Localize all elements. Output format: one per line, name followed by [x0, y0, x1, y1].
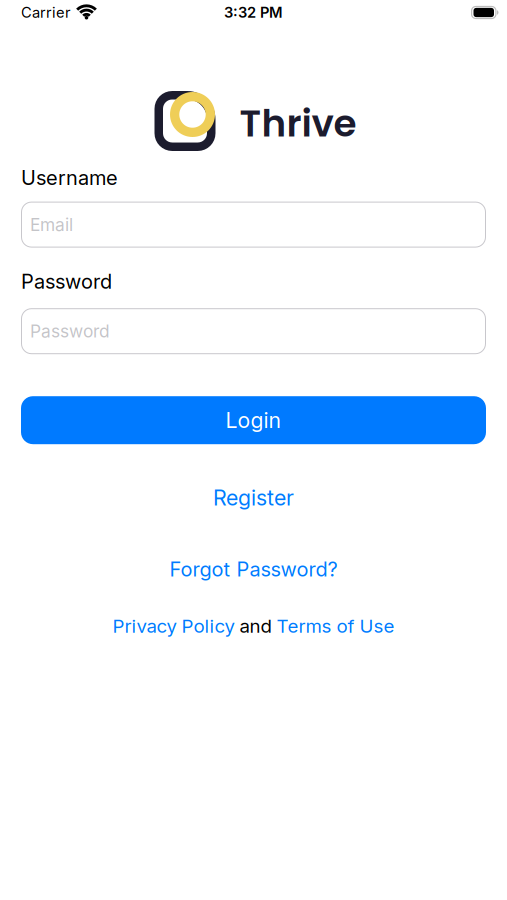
staticText: and	[234, 615, 276, 637]
staticText: Password	[21, 270, 112, 293]
button[interactable]: Privacy Policy	[112, 615, 234, 637]
button[interactable]: Login	[21, 396, 486, 444]
button[interactable]: Terms of Use	[276, 615, 394, 637]
staticText: Username	[21, 166, 118, 190]
staticText: Password	[34, 321, 114, 341]
staticText: Thrive	[239, 97, 356, 150]
staticText: Terms of Use	[276, 615, 394, 637]
staticText: Password	[30, 321, 110, 341]
staticText: Register	[213, 485, 294, 510]
staticText: Email	[34, 214, 77, 235]
staticText: Privacy Policy	[112, 615, 234, 637]
staticText: Email	[30, 214, 73, 235]
staticText: 3:32 PM	[224, 4, 283, 21]
staticText: Forgot Password?	[169, 557, 337, 581]
secureTextField[interactable]: Password	[34, 321, 473, 341]
textField[interactable]: Email	[34, 214, 473, 235]
staticText: Login	[225, 408, 281, 433]
button[interactable]: Forgot Password?	[169, 557, 337, 581]
staticText: Carrier	[21, 4, 71, 21]
button[interactable]: Register	[213, 485, 294, 510]
